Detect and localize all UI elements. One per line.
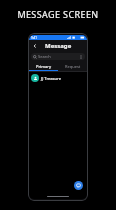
button[interactable]: JJ Treasure [29,72,87,84]
staticText: 9:41 [31,36,37,40]
button[interactable]: New message [74,181,83,190]
staticText: Search [38,54,51,59]
staticText: Request [65,64,81,69]
button[interactable]: Request [58,62,87,71]
staticText: Primary [36,64,52,69]
staticText: Message [45,42,72,50]
button[interactable]: Search [31,53,85,60]
staticText: MESSAGE SCREEN [17,8,99,20]
button[interactable]: Primary [29,62,58,71]
button[interactable]: Back [30,41,39,50]
staticText: JJ Treasure [41,76,61,81]
